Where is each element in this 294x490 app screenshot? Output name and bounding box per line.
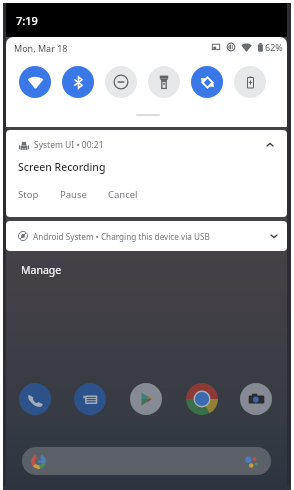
button[interactable]: Stop bbox=[18, 188, 39, 201]
button[interactable]: Cancel bbox=[108, 188, 138, 201]
button[interactable]: Chrome bbox=[186, 383, 218, 415]
button[interactable]: Collapse bbox=[264, 139, 276, 151]
staticText: Manage bbox=[21, 263, 62, 277]
button[interactable]: Pause bbox=[60, 188, 87, 201]
button[interactable]: Phone bbox=[19, 383, 51, 415]
staticText: Stop bbox=[18, 188, 39, 201]
button[interactable]: Search bbox=[22, 447, 271, 475]
button[interactable]: Messages bbox=[74, 383, 106, 415]
button[interactable]: Auto-rotate bbox=[191, 66, 223, 98]
staticText: System UI • 00:21 bbox=[34, 139, 104, 151]
button[interactable]: Wi-Fi bbox=[19, 66, 51, 98]
staticText: 62% bbox=[265, 41, 283, 53]
staticText: Cancel bbox=[108, 188, 138, 201]
button[interactable]: Play Store bbox=[130, 383, 162, 415]
button[interactable]: Bluetooth bbox=[62, 66, 94, 98]
staticText: Mon, Mar 18 bbox=[14, 42, 68, 54]
button[interactable]: Expand bbox=[268, 230, 280, 242]
button[interactable]: Manage bbox=[18, 261, 65, 279]
button[interactable]: Battery saver bbox=[234, 66, 266, 98]
button[interactable]: Do not disturb bbox=[105, 66, 137, 98]
staticText: Android System • Charging this device vi… bbox=[33, 231, 210, 242]
button[interactable]: Flashlight bbox=[148, 66, 180, 98]
staticText: 7:19 bbox=[16, 13, 38, 28]
staticText: Pause bbox=[60, 188, 87, 201]
staticText: Screen Recording bbox=[18, 160, 106, 174]
button[interactable]: Camera bbox=[240, 383, 272, 415]
